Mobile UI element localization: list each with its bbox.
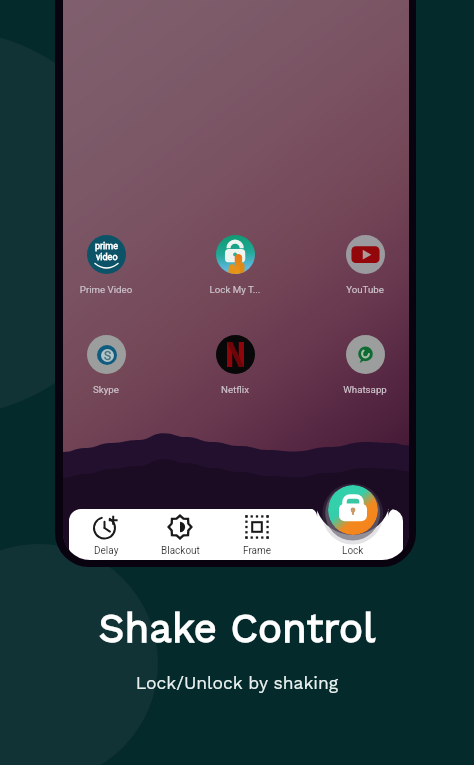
staticText: Frame — [243, 545, 272, 557]
staticText: Netflix — [190, 384, 280, 395]
staticText: Lock My T... — [190, 284, 280, 295]
button[interactable]: Frame — [222, 512, 292, 558]
button[interactable]: prime — [63, 235, 151, 295]
button[interactable]: Whatsapp — [320, 335, 409, 395]
staticText: Whatsapp — [320, 384, 409, 395]
staticText: Prime Video — [63, 284, 151, 295]
staticText: video — [96, 252, 118, 263]
button[interactable]: Lock — [328, 485, 378, 535]
button[interactable]: S — [63, 335, 151, 395]
staticText: prime — [95, 241, 118, 252]
staticText: Delay — [94, 545, 119, 557]
staticText: Blackout — [161, 545, 200, 557]
button[interactable]: Blackout — [145, 512, 215, 558]
staticText: Shake Control — [0, 605, 474, 652]
staticText: Lock — [342, 545, 364, 557]
staticText: Lock/Unlock by shaking — [0, 673, 474, 694]
staticText: Skype — [63, 384, 151, 395]
staticText: S — [104, 349, 112, 362]
button[interactable]: Delay — [71, 512, 141, 558]
staticText: YouTube — [320, 284, 409, 295]
button[interactable]: Lock My T... — [190, 235, 280, 295]
button[interactable]: Netflix — [190, 335, 280, 395]
button[interactable]: Lock — [318, 545, 388, 560]
button[interactable]: YouTube — [320, 235, 409, 295]
